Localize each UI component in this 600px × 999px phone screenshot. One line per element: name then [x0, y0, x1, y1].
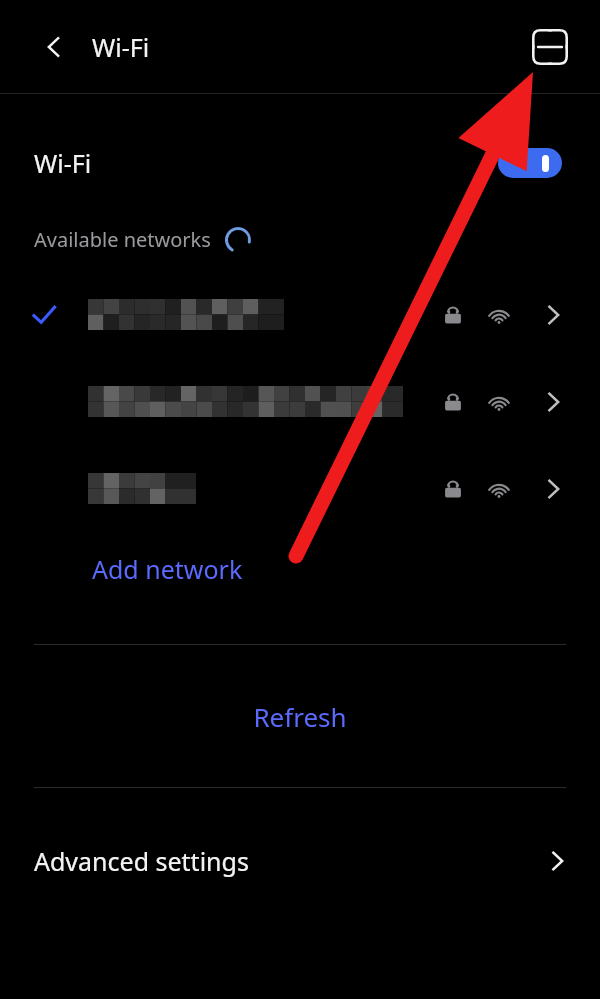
staticText: Add network: [92, 552, 243, 586]
button[interactable]: Advanced settings: [0, 788, 600, 934]
button[interactable]: Scan QR code: [522, 19, 578, 75]
staticText: Available networks: [34, 226, 211, 253]
button[interactable]: [0, 445, 600, 532]
staticText: Refresh: [253, 699, 347, 734]
staticText: Wi-Fi: [92, 30, 150, 64]
staticText: Advanced settings: [34, 844, 249, 878]
button[interactable]: Wi-Fi: [0, 134, 600, 192]
button[interactable]: Back: [26, 19, 82, 75]
button[interactable]: [0, 358, 600, 445]
staticText: Wi-Fi: [34, 146, 92, 180]
button[interactable]: Add network: [0, 532, 600, 606]
button[interactable]: Refresh: [0, 645, 600, 787]
button[interactable]: [0, 271, 600, 358]
